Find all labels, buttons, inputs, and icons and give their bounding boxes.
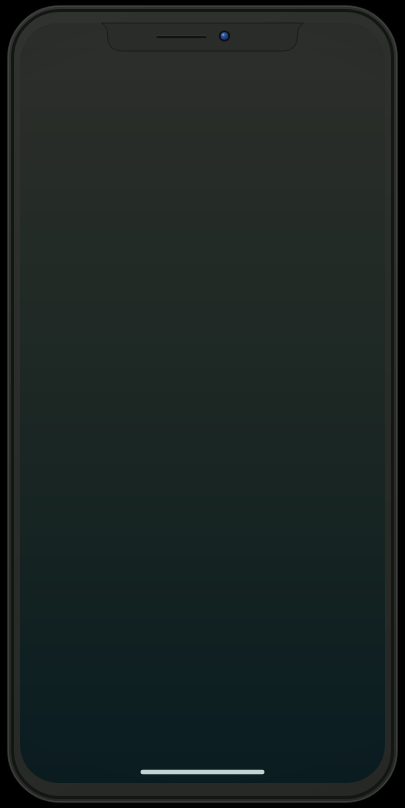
button[interactable]: Screen bbox=[0, 0, 405, 808]
